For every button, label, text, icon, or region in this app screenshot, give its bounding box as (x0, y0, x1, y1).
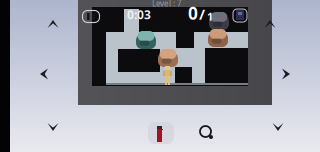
button[interactable]: Pause (82, 10, 100, 23)
button[interactable]: Inventory (233, 9, 247, 22)
staticText: 1 (207, 9, 213, 24)
button[interactable]: Move down (263, 114, 293, 140)
staticText: 0:03 (127, 6, 151, 22)
staticText: Level : 7 (152, 0, 182, 9)
button[interactable]: Move up (255, 11, 285, 37)
button[interactable]: Fire extinguisher tool (148, 122, 174, 144)
button[interactable]: Move up (38, 11, 68, 37)
button[interactable]: Move down (38, 114, 68, 140)
button[interactable]: Move left (29, 61, 59, 87)
staticText: / (199, 4, 205, 24)
button[interactable]: Move right (271, 61, 301, 87)
button[interactable]: Search (194, 122, 220, 144)
staticText: 0 (188, 1, 198, 24)
